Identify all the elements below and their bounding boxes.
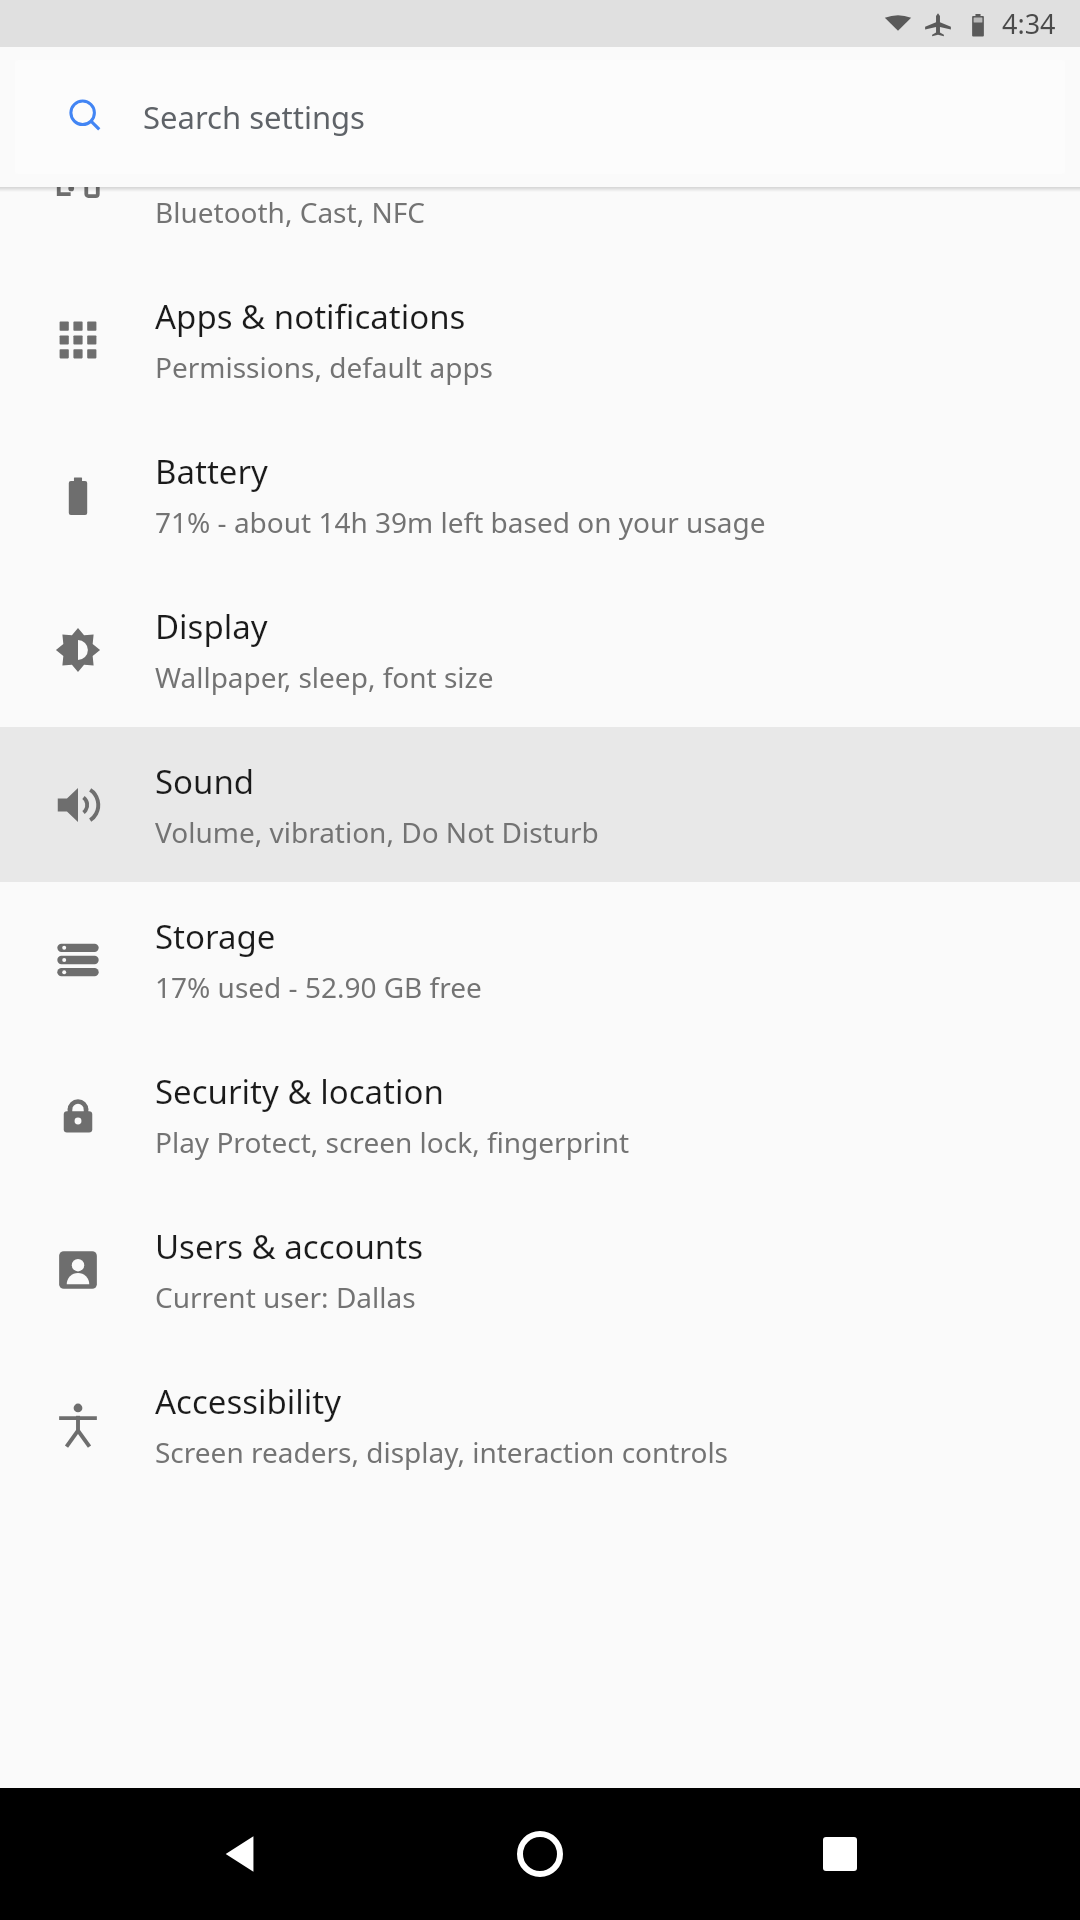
staticText: Permissions, default apps — [155, 348, 494, 386]
button[interactable]: Storage — [0, 882, 1080, 1037]
staticText: Users & accounts — [155, 1224, 423, 1269]
staticText: Sound — [155, 759, 255, 804]
staticText: Wallpaper, sleep, font size — [155, 658, 494, 696]
button[interactable]: Recent apps — [780, 1794, 900, 1914]
button[interactable]: Display — [0, 572, 1080, 727]
button[interactable]: Apps & notifications — [0, 262, 1080, 417]
staticText: Volume, vibration, Do Not Disturb — [155, 813, 599, 851]
button[interactable]: Battery — [0, 417, 1080, 572]
button[interactable]: Security & location — [0, 1037, 1080, 1192]
button[interactable]: Connected devices — [0, 107, 1080, 262]
staticText: 71% - about 14h 39m left based on your u… — [155, 503, 766, 541]
staticText: Play Protect, screen lock, fingerprint — [155, 1123, 630, 1161]
button[interactable]: Sound — [0, 727, 1080, 882]
staticText: Security & location — [155, 1069, 444, 1114]
staticText: Accessibility — [155, 1379, 342, 1424]
staticText: Screen readers, display, interaction con… — [155, 1433, 729, 1471]
button[interactable]: Back — [180, 1794, 300, 1914]
staticText: Storage — [155, 914, 276, 959]
button[interactable]: Home — [480, 1794, 600, 1914]
button[interactable]: Accessibility — [0, 1347, 1080, 1502]
staticText: Bluetooth, Cast, NFC — [155, 193, 425, 231]
button[interactable]: Search settings — [15, 60, 1065, 174]
staticText: Battery — [155, 449, 268, 494]
staticText: Apps & notifications — [155, 294, 466, 339]
staticText: 4:34 — [1002, 5, 1056, 42]
staticText: 17% used - 52.90 GB free — [155, 968, 482, 1006]
staticText: Current user: Dallas — [155, 1278, 416, 1316]
staticText: Display — [155, 604, 268, 649]
button[interactable]: Users & accounts — [0, 1192, 1080, 1347]
staticText: Search settings — [143, 96, 365, 138]
